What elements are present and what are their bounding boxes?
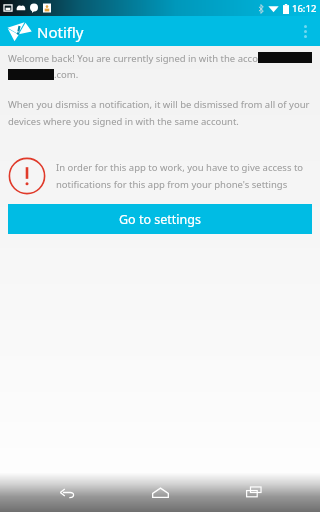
button[interactable]: Recent apps xyxy=(227,472,281,512)
staticText: 16:12 xyxy=(292,2,317,15)
button[interactable]: More options xyxy=(290,16,320,46)
staticText: Go to settings xyxy=(119,211,201,228)
button[interactable]: Go to settings xyxy=(8,204,312,234)
staticText: In order for this app to work, you have … xyxy=(56,161,304,174)
staticText: When you dismiss a notification, it will… xyxy=(8,98,310,111)
button[interactable]: Back xyxy=(40,472,94,512)
staticText: .com. xyxy=(54,68,79,81)
button[interactable]: Home xyxy=(133,472,187,512)
staticText: notifications for this app from your pho… xyxy=(56,178,288,191)
staticText: Welcome back! You are currently signed i… xyxy=(8,52,274,65)
staticText: Notifly xyxy=(37,22,84,42)
staticText: devices where you signed in with the sam… xyxy=(8,115,239,128)
